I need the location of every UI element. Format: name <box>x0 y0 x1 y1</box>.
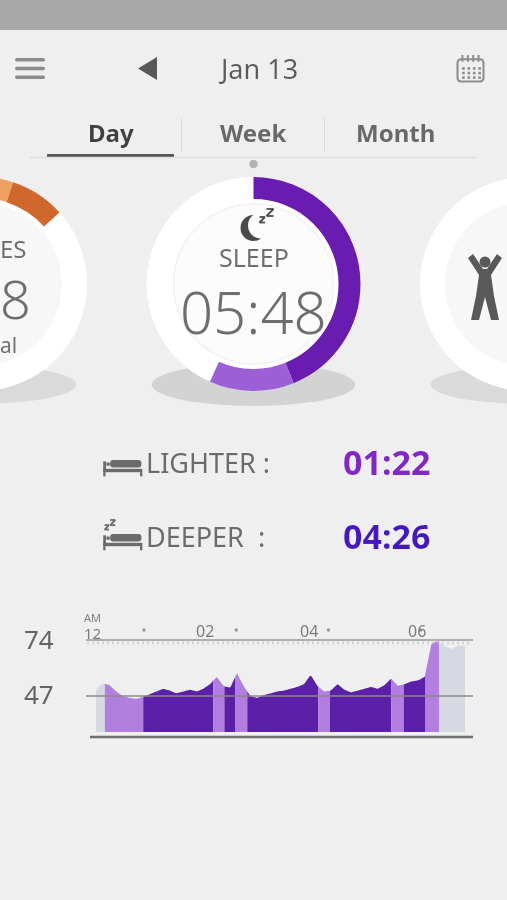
staticText: 04:26 <box>343 513 431 559</box>
staticText: 74 <box>24 621 54 656</box>
button[interactable]: Menu <box>6 44 54 92</box>
button[interactable]: Month <box>325 112 467 158</box>
staticText: ES <box>0 232 27 265</box>
staticText: Jan 13 <box>221 50 299 87</box>
staticText: Day <box>88 116 134 149</box>
button[interactable]: Calendar <box>447 45 493 91</box>
staticText: 01:22 <box>343 439 431 485</box>
staticText: 04 <box>300 620 319 642</box>
staticText: 12 <box>84 623 102 643</box>
staticText: SLEEP <box>219 240 289 274</box>
staticText: 8 <box>0 261 31 335</box>
button[interactable]: Previous day <box>124 45 170 91</box>
button[interactable]: Week <box>182 112 324 158</box>
staticText: 06 <box>408 620 427 642</box>
button[interactable]: Day <box>40 112 181 158</box>
staticText: 02 <box>196 620 215 642</box>
button[interactable]: DEEPER : <box>0 512 507 560</box>
staticText: 47 <box>24 676 54 711</box>
button[interactable]: Sleep dial <box>147 177 361 391</box>
staticText: LIGHTER : <box>146 444 271 481</box>
staticText: Week <box>220 116 287 149</box>
staticText: 05:48 <box>180 272 327 351</box>
staticText: AM <box>84 610 102 625</box>
staticText: DEEPER : <box>146 518 266 555</box>
staticText: Month <box>356 116 436 149</box>
staticText: al <box>0 331 18 360</box>
button[interactable]: LIGHTER : <box>0 438 507 486</box>
button[interactable]: Heart rate and sleep phases chart <box>0 608 507 758</box>
